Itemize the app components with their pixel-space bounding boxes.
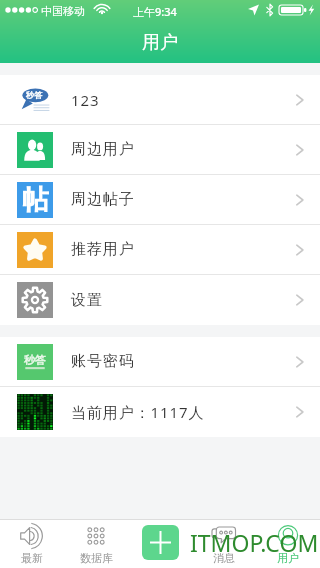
staticText: 数据库: [80, 551, 113, 565]
button[interactable]: 消息: [192, 519, 256, 568]
staticText: 周边用户: [71, 140, 135, 159]
staticText: 设置: [71, 291, 103, 310]
button[interactable]: 当前用户：1117人: [0, 387, 320, 437]
staticText: 123: [71, 90, 100, 110]
button[interactable]: 周边用户: [0, 125, 320, 174]
staticText: 上午9:34: [133, 4, 177, 19]
button[interactable]: Add: [128, 519, 192, 568]
staticText: 当前用户：1117人: [71, 402, 205, 422]
button[interactable]: 秒答: [0, 75, 320, 124]
staticText: 推荐用户: [71, 240, 135, 259]
button[interactable]: 秒答: [0, 337, 320, 386]
button[interactable]: 用户: [256, 519, 320, 568]
staticText: 秒答: [24, 353, 46, 367]
button[interactable]: 推荐用户: [0, 225, 320, 274]
staticText: ITMOP.COM: [190, 527, 319, 558]
button[interactable]: 数据库: [64, 519, 128, 568]
button[interactable]: 帖: [0, 175, 320, 224]
staticText: 用户: [277, 551, 299, 565]
staticText: 账号密码: [71, 352, 135, 371]
button[interactable]: 设置: [0, 275, 320, 325]
staticText: 中国移动: [41, 4, 85, 18]
button[interactable]: 最新: [0, 519, 64, 568]
staticText: 用户: [142, 31, 178, 54]
staticText: 最新: [21, 551, 43, 565]
staticText: 秒答: [26, 90, 42, 100]
staticText: 周边帖子: [71, 190, 135, 209]
staticText: 帖: [22, 183, 49, 217]
staticText: 消息: [213, 551, 235, 565]
